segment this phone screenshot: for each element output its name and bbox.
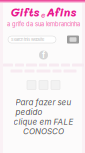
staticText: a grife da sua lembrancinha	[7, 21, 80, 27]
button[interactable]: Facebook	[39, 50, 48, 59]
staticText: Para fazer seu pedido	[15, 97, 71, 117]
staticText: Gifts	[10, 4, 39, 20]
staticText: Afins	[46, 4, 76, 20]
staticText: CONOSCO	[23, 127, 64, 136]
staticText: clique em FALE	[13, 117, 73, 127]
staticText: f	[42, 50, 45, 60]
staticText: e	[41, 10, 45, 20]
button[interactable]: Search this website	[8, 36, 56, 43]
button[interactable]: Search	[67, 35, 79, 43]
staticText: Search this website	[11, 37, 44, 42]
